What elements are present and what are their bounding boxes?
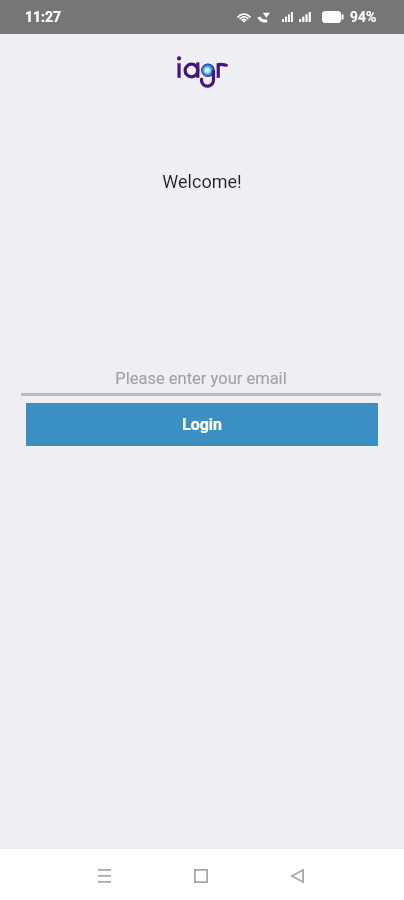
button[interactable]: Login xyxy=(26,403,378,446)
staticText: Welcome! xyxy=(0,171,404,192)
staticText: Please enter your email xyxy=(21,369,381,388)
staticText: 11:27 xyxy=(25,9,62,25)
button[interactable]: Please enter your email xyxy=(21,368,381,396)
button[interactable]: Back xyxy=(273,852,321,900)
button[interactable]: Home xyxy=(177,852,225,900)
staticText: Login xyxy=(182,415,223,434)
staticText: 94% xyxy=(350,9,377,25)
button[interactable]: Recent apps xyxy=(80,852,128,900)
